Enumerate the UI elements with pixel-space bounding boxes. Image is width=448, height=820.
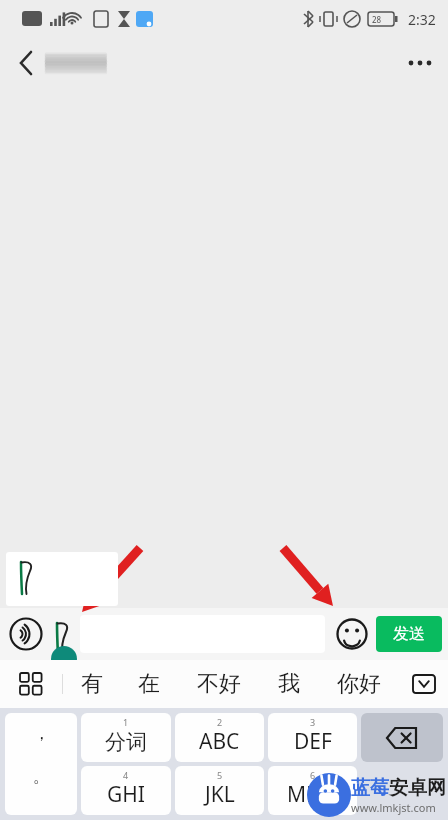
staticText: 有 bbox=[81, 670, 103, 698]
staticText: 蓝莓 bbox=[351, 776, 389, 800]
button[interactable]: More options bbox=[398, 41, 442, 85]
button[interactable]: 我 bbox=[260, 660, 317, 708]
button[interactable]: 2 bbox=[175, 713, 264, 762]
staticText: 1 bbox=[123, 716, 129, 728]
button[interactable]: Punctuation bbox=[5, 713, 77, 815]
button[interactable]: 发送 bbox=[376, 616, 442, 652]
staticText: ， bbox=[33, 723, 50, 744]
button[interactable]: Back bbox=[4, 41, 48, 85]
staticText: 6 bbox=[310, 769, 316, 781]
button[interactable]: Voice input bbox=[6, 614, 46, 654]
staticText: 我 bbox=[278, 670, 300, 698]
staticText: 4 bbox=[123, 769, 129, 781]
button[interactable]: 有 bbox=[63, 660, 120, 708]
staticText: 不好 bbox=[197, 670, 241, 698]
staticText: 分词 bbox=[105, 729, 147, 755]
button[interactable]: Backspace bbox=[361, 713, 443, 762]
button[interactable]: 1 bbox=[81, 713, 171, 762]
button[interactable]: Emoji bbox=[332, 614, 372, 654]
button[interactable]: 在 bbox=[120, 660, 177, 708]
button[interactable]: 6 bbox=[268, 766, 357, 815]
button[interactable]: 你好 bbox=[317, 660, 400, 708]
button[interactable]: Expand candidates bbox=[400, 660, 448, 708]
staticText: 2:32 bbox=[408, 10, 436, 29]
button[interactable]: 5 bbox=[175, 766, 264, 815]
staticText: 安卓网 bbox=[389, 776, 446, 800]
staticText: ABC bbox=[199, 727, 240, 756]
staticText: www.lmkjst.com bbox=[351, 800, 436, 815]
staticText: 在 bbox=[138, 670, 160, 698]
button[interactable]: 4 bbox=[81, 766, 171, 815]
staticText: 3 bbox=[310, 716, 316, 728]
staticText: 5 bbox=[217, 769, 223, 781]
staticText: 你好 bbox=[337, 670, 381, 698]
staticText: GHI bbox=[107, 780, 145, 809]
staticText: DEF bbox=[294, 727, 332, 756]
staticText: 28 bbox=[372, 14, 382, 25]
staticText: 2 bbox=[217, 716, 223, 728]
staticText: 发送 bbox=[393, 624, 425, 644]
staticText: JKL bbox=[205, 780, 235, 809]
button[interactable]: Handwriting bbox=[46, 617, 80, 651]
button[interactable]: 3 bbox=[268, 713, 357, 762]
staticText: 。 bbox=[33, 766, 50, 787]
button[interactable]: 不好 bbox=[177, 660, 260, 708]
button[interactable]: Keyboard menu bbox=[0, 660, 62, 708]
staticText: MNO bbox=[287, 780, 339, 809]
